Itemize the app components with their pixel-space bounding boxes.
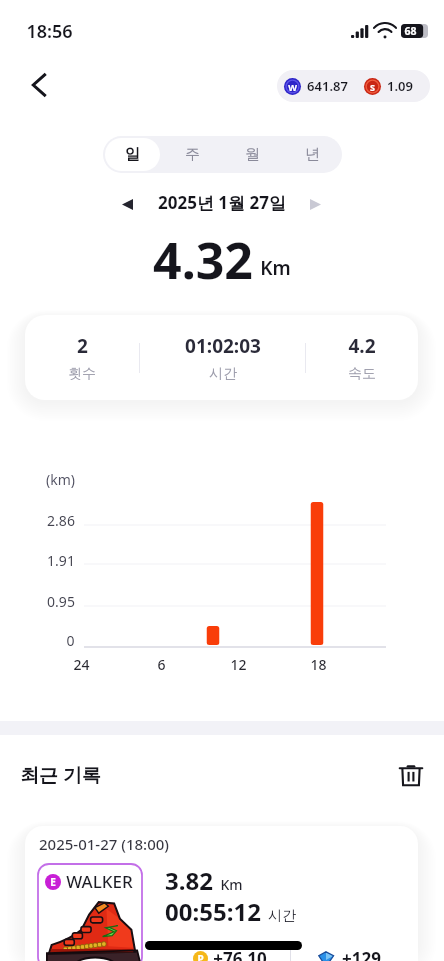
staticText: (km) [46,470,75,489]
staticText: Km [260,255,291,281]
staticText: 00:55:12 [165,895,261,928]
staticText: 시간 [268,907,296,925]
button[interactable]: W [277,70,430,102]
button[interactable]: Delete records [392,756,430,794]
staticText: 최근 기록 [20,762,101,788]
button[interactable]: 년 [284,138,340,171]
staticText: 시간 [209,365,237,383]
button[interactable]: Back [16,63,60,107]
staticText: 월 [245,145,260,164]
staticText: 641.87 [307,77,348,95]
button[interactable]: Next day [298,189,333,219]
staticText: 6 [157,655,166,674]
button[interactable]: Previous day [110,189,145,219]
staticText: 년 [305,145,320,164]
staticText: 0.95 [47,592,75,611]
staticText: E [50,875,56,889]
staticText: 2025년 1월 27일 [158,191,286,214]
staticText: 12 [230,655,247,674]
staticText: 2 [77,333,88,359]
button[interactable]: 월 [224,138,280,171]
staticText: +76.10 [213,947,267,961]
staticText: 1.09 [387,77,413,95]
staticText: 18 [310,655,327,674]
staticText: 2.86 [47,511,75,530]
staticText: 3.82 [165,864,213,897]
button[interactable]: 2025-01-27 (18:00) [25,826,418,961]
staticText: 24 [73,655,90,674]
staticText: 4.32 [153,226,253,294]
staticText: 4.2 [348,333,376,359]
staticText: W [288,81,297,93]
staticText: 일 [125,145,140,164]
staticText: 18:56 [26,19,73,44]
staticText: 2025-01-27 (18:00) [39,834,169,854]
staticText: 속도 [348,365,376,383]
staticText: 0 [66,631,75,650]
staticText: +129 [342,947,381,961]
staticText: 주 [185,145,200,164]
staticText: 68 [404,24,417,38]
staticText: 1.91 [47,551,75,570]
staticText: 횟수 [68,365,96,383]
staticText: WALKER [66,870,133,893]
staticText: P [197,952,204,961]
button[interactable]: 일 [105,138,160,171]
button[interactable]: 주 [164,138,220,171]
staticText: 01:02:03 [185,333,261,359]
staticText: S [370,81,375,93]
staticText: Km [220,875,243,894]
